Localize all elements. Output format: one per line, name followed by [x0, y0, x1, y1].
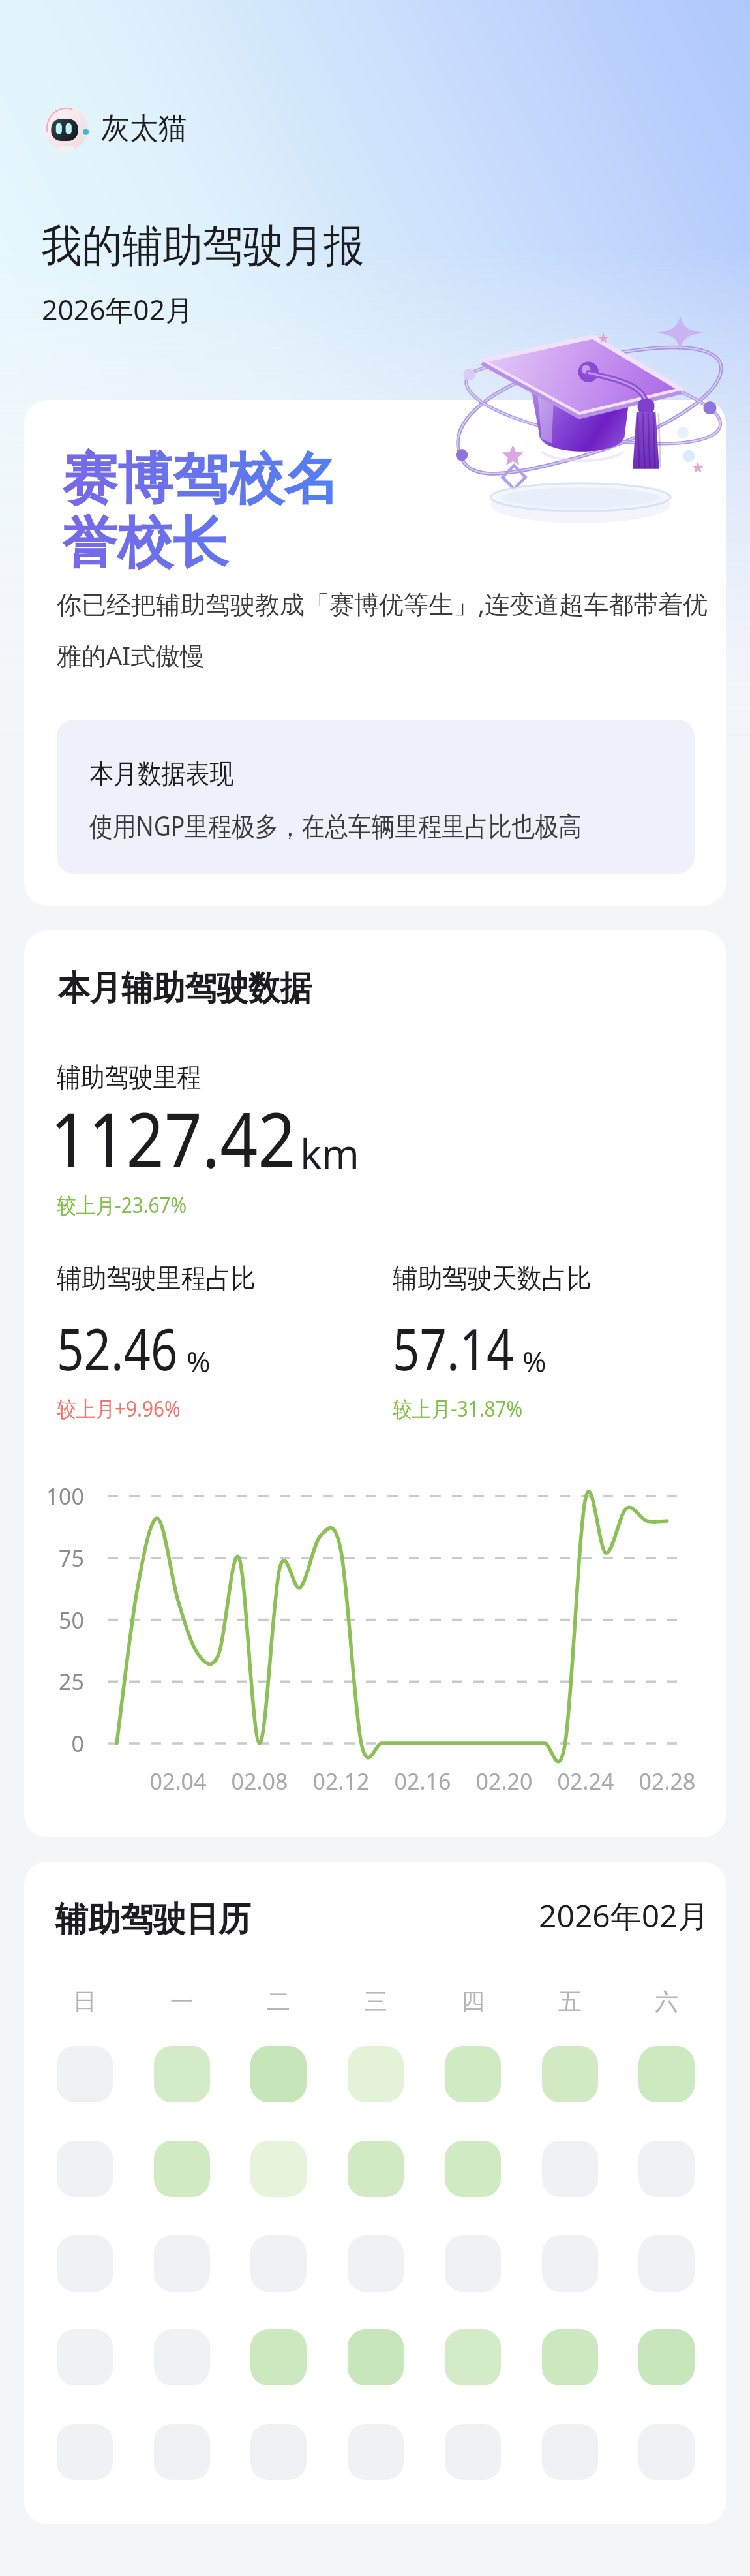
staticText: %	[187, 1342, 211, 1381]
staticText: 57.14	[393, 1309, 514, 1387]
button[interactable]	[250, 2424, 307, 2480]
button[interactable]	[250, 2235, 307, 2292]
staticText: 一	[154, 1987, 210, 2016]
button[interactable]	[348, 2046, 404, 2102]
button[interactable]	[57, 2329, 113, 2385]
staticText: 本月数据表现	[89, 758, 234, 791]
staticText: 灰太猫	[101, 110, 187, 147]
button[interactable]	[445, 2424, 501, 2480]
staticText: 六	[638, 1987, 695, 2016]
staticText: 02.24	[540, 1766, 631, 1796]
staticText: 52.46	[57, 1309, 178, 1387]
staticText: 辅助驾驶天数占比	[393, 1262, 592, 1296]
staticText: 50	[28, 1605, 84, 1635]
staticText: 四	[445, 1987, 501, 2016]
staticText: km	[300, 1126, 360, 1180]
button[interactable]	[542, 2141, 598, 2197]
button[interactable]	[348, 2424, 404, 2480]
button[interactable]	[250, 2329, 307, 2385]
button[interactable]: 灰太猫	[43, 104, 187, 153]
staticText: 辅助驾驶日历	[55, 1898, 251, 1941]
staticText: 日	[57, 1987, 113, 2016]
staticText: %	[522, 1342, 547, 1381]
staticText: 三	[348, 1987, 404, 2016]
staticText: 02.08	[214, 1766, 305, 1796]
staticText: 1127.42	[50, 1087, 296, 1189]
staticText: 02.20	[458, 1766, 550, 1796]
button[interactable]	[638, 2141, 695, 2197]
staticText: 100	[28, 1481, 84, 1511]
staticText: 赛博驾校名 誉校长	[62, 444, 339, 578]
button[interactable]	[154, 2329, 210, 2385]
staticText: 使用NGP里程极多，在总车辆里程里占比也极高	[89, 807, 582, 844]
staticText: 25	[28, 1666, 84, 1696]
staticText: 02.16	[377, 1766, 468, 1796]
button[interactable]	[542, 2046, 598, 2102]
button[interactable]	[57, 2141, 113, 2197]
button[interactable]	[445, 2046, 501, 2102]
button[interactable]	[154, 2141, 210, 2197]
staticText: 2026年02月	[42, 290, 194, 329]
button[interactable]	[542, 2424, 598, 2480]
button[interactable]	[348, 2329, 404, 2385]
button[interactable]	[638, 2424, 695, 2480]
staticText: 75	[28, 1543, 84, 1573]
button[interactable]	[250, 2141, 307, 2197]
staticText: 你已经把辅助驾驶教成「赛博优等生」,连变道超车都带着优 雅的AI式傲慢	[57, 587, 726, 672]
button[interactable]	[638, 2329, 695, 2385]
button[interactable]	[57, 2046, 113, 2102]
button[interactable]	[154, 2235, 210, 2292]
button[interactable]	[445, 2329, 501, 2385]
button[interactable]	[348, 2141, 404, 2197]
button[interactable]	[348, 2235, 404, 2292]
staticText: 02.28	[622, 1766, 713, 1796]
button[interactable]	[154, 2046, 210, 2102]
staticText: 0	[28, 1728, 84, 1758]
staticText: 辅助驾驶里程	[57, 1061, 201, 1095]
staticText: 02.04	[132, 1766, 224, 1796]
button[interactable]	[57, 2424, 113, 2480]
staticText: 本月辅助驾驶数据	[58, 967, 312, 1010]
button[interactable]	[638, 2046, 695, 2102]
button[interactable]	[445, 2141, 501, 2197]
staticText: 较上月-31.87%	[393, 1394, 523, 1423]
staticText: 2026年02月	[539, 1894, 709, 1937]
button[interactable]	[57, 2235, 113, 2292]
staticText: 辅助驾驶里程占比	[57, 1262, 256, 1296]
staticText: 我的辅助驾驶月报	[42, 219, 364, 275]
staticText: 五	[542, 1987, 598, 2016]
staticText: 02.12	[295, 1766, 387, 1796]
button[interactable]	[154, 2424, 210, 2480]
button[interactable]	[542, 2329, 598, 2385]
staticText: 二	[250, 1987, 307, 2016]
button[interactable]	[542, 2235, 598, 2292]
button[interactable]	[445, 2235, 501, 2292]
staticText: 较上月+9.96%	[57, 1394, 181, 1423]
button[interactable]	[250, 2046, 307, 2102]
button[interactable]	[638, 2235, 695, 2292]
staticText: 较上月-23.67%	[57, 1190, 187, 1219]
